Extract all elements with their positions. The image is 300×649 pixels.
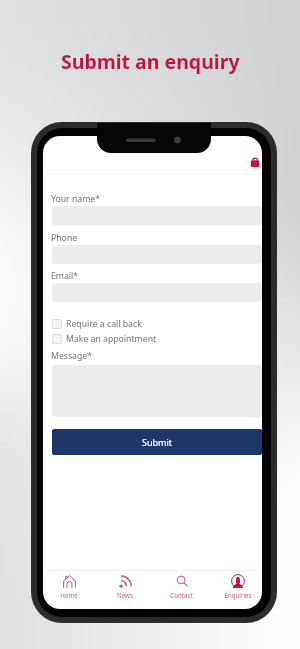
- button[interactable]: Require a call back: [52, 318, 142, 330]
- button[interactable]: News: [100, 574, 149, 599]
- button[interactable]: Basket: [249, 157, 261, 169]
- staticText: Email*: [51, 270, 79, 282]
- staticText: Enquiries: [224, 591, 252, 599]
- button[interactable]: Submit: [52, 429, 262, 455]
- staticText: Message*: [51, 350, 93, 362]
- staticText: Submit: [142, 436, 173, 448]
- staticText: Your name*: [51, 193, 101, 205]
- staticText: Home: [60, 591, 78, 599]
- staticText: Make an appointment: [66, 333, 157, 345]
- staticText: Require a call back: [66, 318, 142, 330]
- button[interactable]: Make an appointment: [52, 333, 157, 345]
- button[interactable]: Enquiries: [213, 574, 262, 599]
- button[interactable]: Contact: [157, 574, 206, 599]
- staticText: Submit an enquiry: [61, 48, 240, 75]
- button[interactable]: Home: [44, 574, 93, 599]
- staticText: News: [117, 591, 133, 599]
- staticText: Contact: [170, 591, 193, 599]
- staticText: Phone: [51, 232, 78, 244]
